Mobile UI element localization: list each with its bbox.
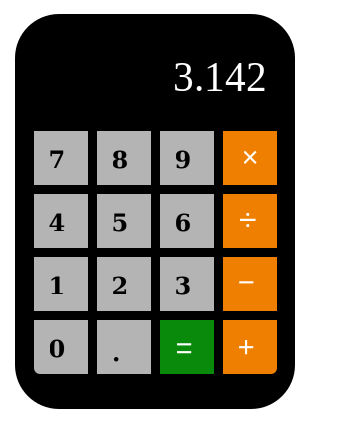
staticText: 2 <box>111 272 128 300</box>
button[interactable]: 4 <box>34 194 88 248</box>
staticText: = <box>175 332 192 364</box>
staticText: 1 <box>48 272 65 300</box>
button[interactable]: 1 <box>34 257 88 311</box>
staticText: 7 <box>48 146 65 174</box>
staticText: 9 <box>174 146 191 174</box>
button[interactable]: 6 <box>160 194 214 248</box>
button[interactable]: 0 <box>34 320 88 374</box>
button[interactable]: 3 <box>160 257 214 311</box>
staticText: 3 <box>174 272 191 300</box>
button[interactable]: 5 <box>97 194 151 248</box>
button[interactable]: 2 <box>97 257 151 311</box>
staticText: 3.142 <box>173 54 267 100</box>
button[interactable]: Add <box>223 320 277 374</box>
staticText: + <box>237 331 254 363</box>
button[interactable]: 8 <box>97 131 151 185</box>
staticText: 4 <box>48 209 65 237</box>
staticText: 5 <box>111 209 128 237</box>
button[interactable]: Divide <box>223 194 277 248</box>
staticText: 8 <box>111 146 128 174</box>
button[interactable]: Decimal point <box>97 320 151 374</box>
staticText: − <box>237 266 254 298</box>
button[interactable]: Multiply <box>223 131 277 185</box>
button[interactable]: 9 <box>160 131 214 185</box>
button[interactable]: Subtract <box>223 257 277 311</box>
staticText: × <box>241 141 258 173</box>
button[interactable]: 7 <box>34 131 88 185</box>
staticText: ÷ <box>239 201 257 237</box>
staticText: 6 <box>174 209 191 237</box>
staticText: . <box>112 339 120 367</box>
button[interactable]: Equals <box>160 320 214 374</box>
staticText: 0 <box>48 335 65 363</box>
